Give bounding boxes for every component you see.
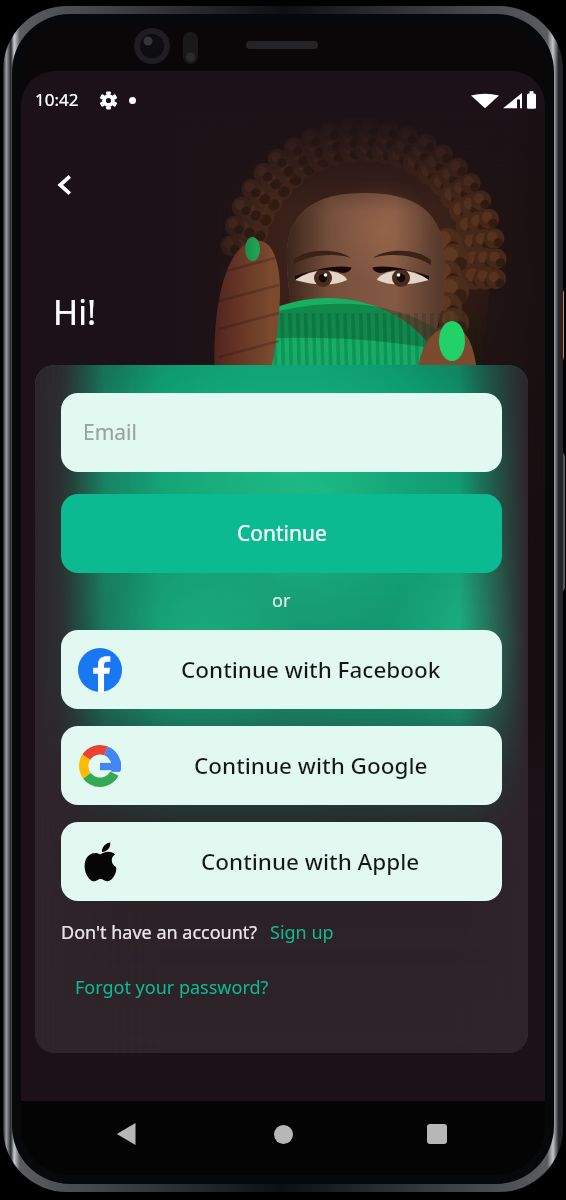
staticText: Email <box>83 418 137 447</box>
button[interactable]: Home <box>261 1112 305 1156</box>
button[interactable]: Back <box>43 163 87 207</box>
button[interactable]: Continue with Google <box>61 726 502 805</box>
button[interactable]: Recent apps <box>415 1112 459 1156</box>
staticText: Continue <box>237 519 327 548</box>
staticText: Don't have an account? <box>61 920 258 945</box>
button[interactable]: Continue with Apple <box>61 822 502 901</box>
button[interactable]: Email <box>61 393 502 472</box>
staticText: Sign up <box>270 920 334 945</box>
button[interactable]: Continue with Facebook <box>61 630 502 709</box>
staticText: Continue with Google <box>194 750 428 781</box>
staticText: Hi! <box>53 289 97 335</box>
button[interactable]: Forgot your password? <box>75 975 269 1000</box>
button[interactable]: Sign up <box>270 920 334 945</box>
staticText: Forgot your password? <box>75 975 269 1000</box>
staticText: 10:42 <box>35 88 79 111</box>
staticText: Continue with Facebook <box>181 654 441 685</box>
button[interactable]: Continue <box>61 494 502 573</box>
button[interactable]: Back <box>107 1112 151 1156</box>
staticText: or <box>272 588 291 613</box>
staticText: Continue with Apple <box>201 846 420 877</box>
